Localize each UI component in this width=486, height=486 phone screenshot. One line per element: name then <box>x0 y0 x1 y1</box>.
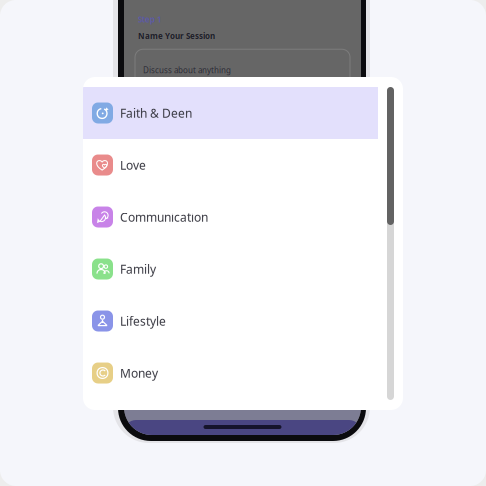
button[interactable]: Faith & Deen <box>83 87 378 139</box>
staticText: Family <box>120 261 156 277</box>
staticText: Money <box>120 365 158 381</box>
staticText: Discuss about anything <box>143 65 231 75</box>
staticText: Faith & Deen <box>120 105 192 121</box>
staticText: Name Your Session <box>138 31 215 41</box>
staticText: Step 1 <box>138 14 162 25</box>
staticText: Lifestyle <box>120 313 166 329</box>
staticText: Communication <box>120 209 208 225</box>
button[interactable]: Lifestyle <box>83 295 378 347</box>
staticText: Love <box>120 157 146 173</box>
button[interactable]: Love <box>83 139 378 191</box>
button[interactable]: Communication <box>83 191 378 243</box>
button[interactable]: Family <box>83 243 378 295</box>
button[interactable]: Money <box>83 347 378 399</box>
